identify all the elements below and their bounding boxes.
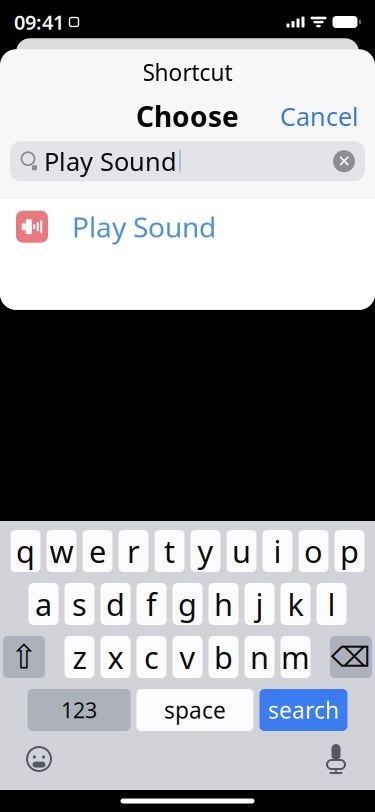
staticText: Choose [136,98,239,135]
button[interactable]: x [100,636,130,678]
button[interactable]: Clear search text [323,143,365,179]
staticText: q [16,531,35,571]
button[interactable]: o [298,530,328,572]
staticText: c [144,637,159,677]
staticText: space [164,695,226,725]
staticText: Cancel [280,99,359,133]
staticText: x [107,637,123,677]
button[interactable]: s [64,583,94,625]
staticText: ⇧ [10,638,38,676]
staticText: h [214,584,233,624]
staticText: k [287,584,303,624]
staticText: s [72,584,87,624]
staticText: p [340,531,359,571]
button[interactable]: j [244,583,274,625]
staticText: z [72,637,86,677]
staticText: v [179,637,195,677]
button[interactable]: g [172,583,202,625]
staticText: w [49,531,73,571]
staticText: f [146,584,157,624]
button[interactable]: r [118,530,148,572]
button[interactable]: Delete [330,636,372,678]
button[interactable]: t [154,530,184,572]
staticText: j [255,584,263,624]
button[interactable]: w [46,530,76,572]
staticText: Shortcut [142,57,232,87]
button[interactable]: y [190,530,220,572]
staticText: g [178,584,197,624]
button[interactable]: z [64,636,94,678]
staticText: t [164,531,175,571]
staticText: 123 [61,696,97,724]
button[interactable]: l [316,583,346,625]
button[interactable]: Play Sound [0,198,375,256]
button[interactable]: h [208,583,238,625]
button[interactable]: Shift [3,636,45,678]
staticText: search [268,695,339,725]
button[interactable]: c [136,636,166,678]
button[interactable]: i [262,530,292,572]
button[interactable]: k [280,583,310,625]
button[interactable]: e [82,530,112,572]
staticText: d [106,584,125,624]
staticText: o [304,531,323,571]
staticText: n [250,637,269,677]
staticText: b [214,637,233,677]
staticText: 09:41 [14,9,64,35]
staticText: l [327,584,335,624]
button[interactable]: a [28,583,58,625]
staticText: r [127,531,140,571]
button[interactable]: n [244,636,274,678]
button[interactable]: Emoji keyboard [14,734,64,784]
staticText: ⌫ [331,641,371,673]
button[interactable]: search [259,689,347,731]
button[interactable]: f [136,583,166,625]
button[interactable]: 123 [27,689,130,731]
button[interactable]: q [10,530,40,572]
button[interactable]: p [334,530,364,572]
staticText: u [232,531,251,571]
button[interactable]: b [208,636,238,678]
staticText: Play Sound [44,144,177,178]
staticText: e [89,531,106,571]
button[interactable]: u [226,530,256,572]
button[interactable]: Dictation [311,731,361,787]
staticText: i [273,531,281,571]
button[interactable]: Cancel [264,89,375,143]
button[interactable]: v [172,636,202,678]
staticText: Play Sound [72,208,216,245]
staticText: y [197,531,213,571]
button[interactable]: d [100,583,130,625]
staticText: ✕ [337,152,350,170]
button[interactable]: m [280,636,310,678]
staticText: a [35,584,52,624]
button[interactable]: space [136,689,253,731]
staticText: m [281,637,310,677]
